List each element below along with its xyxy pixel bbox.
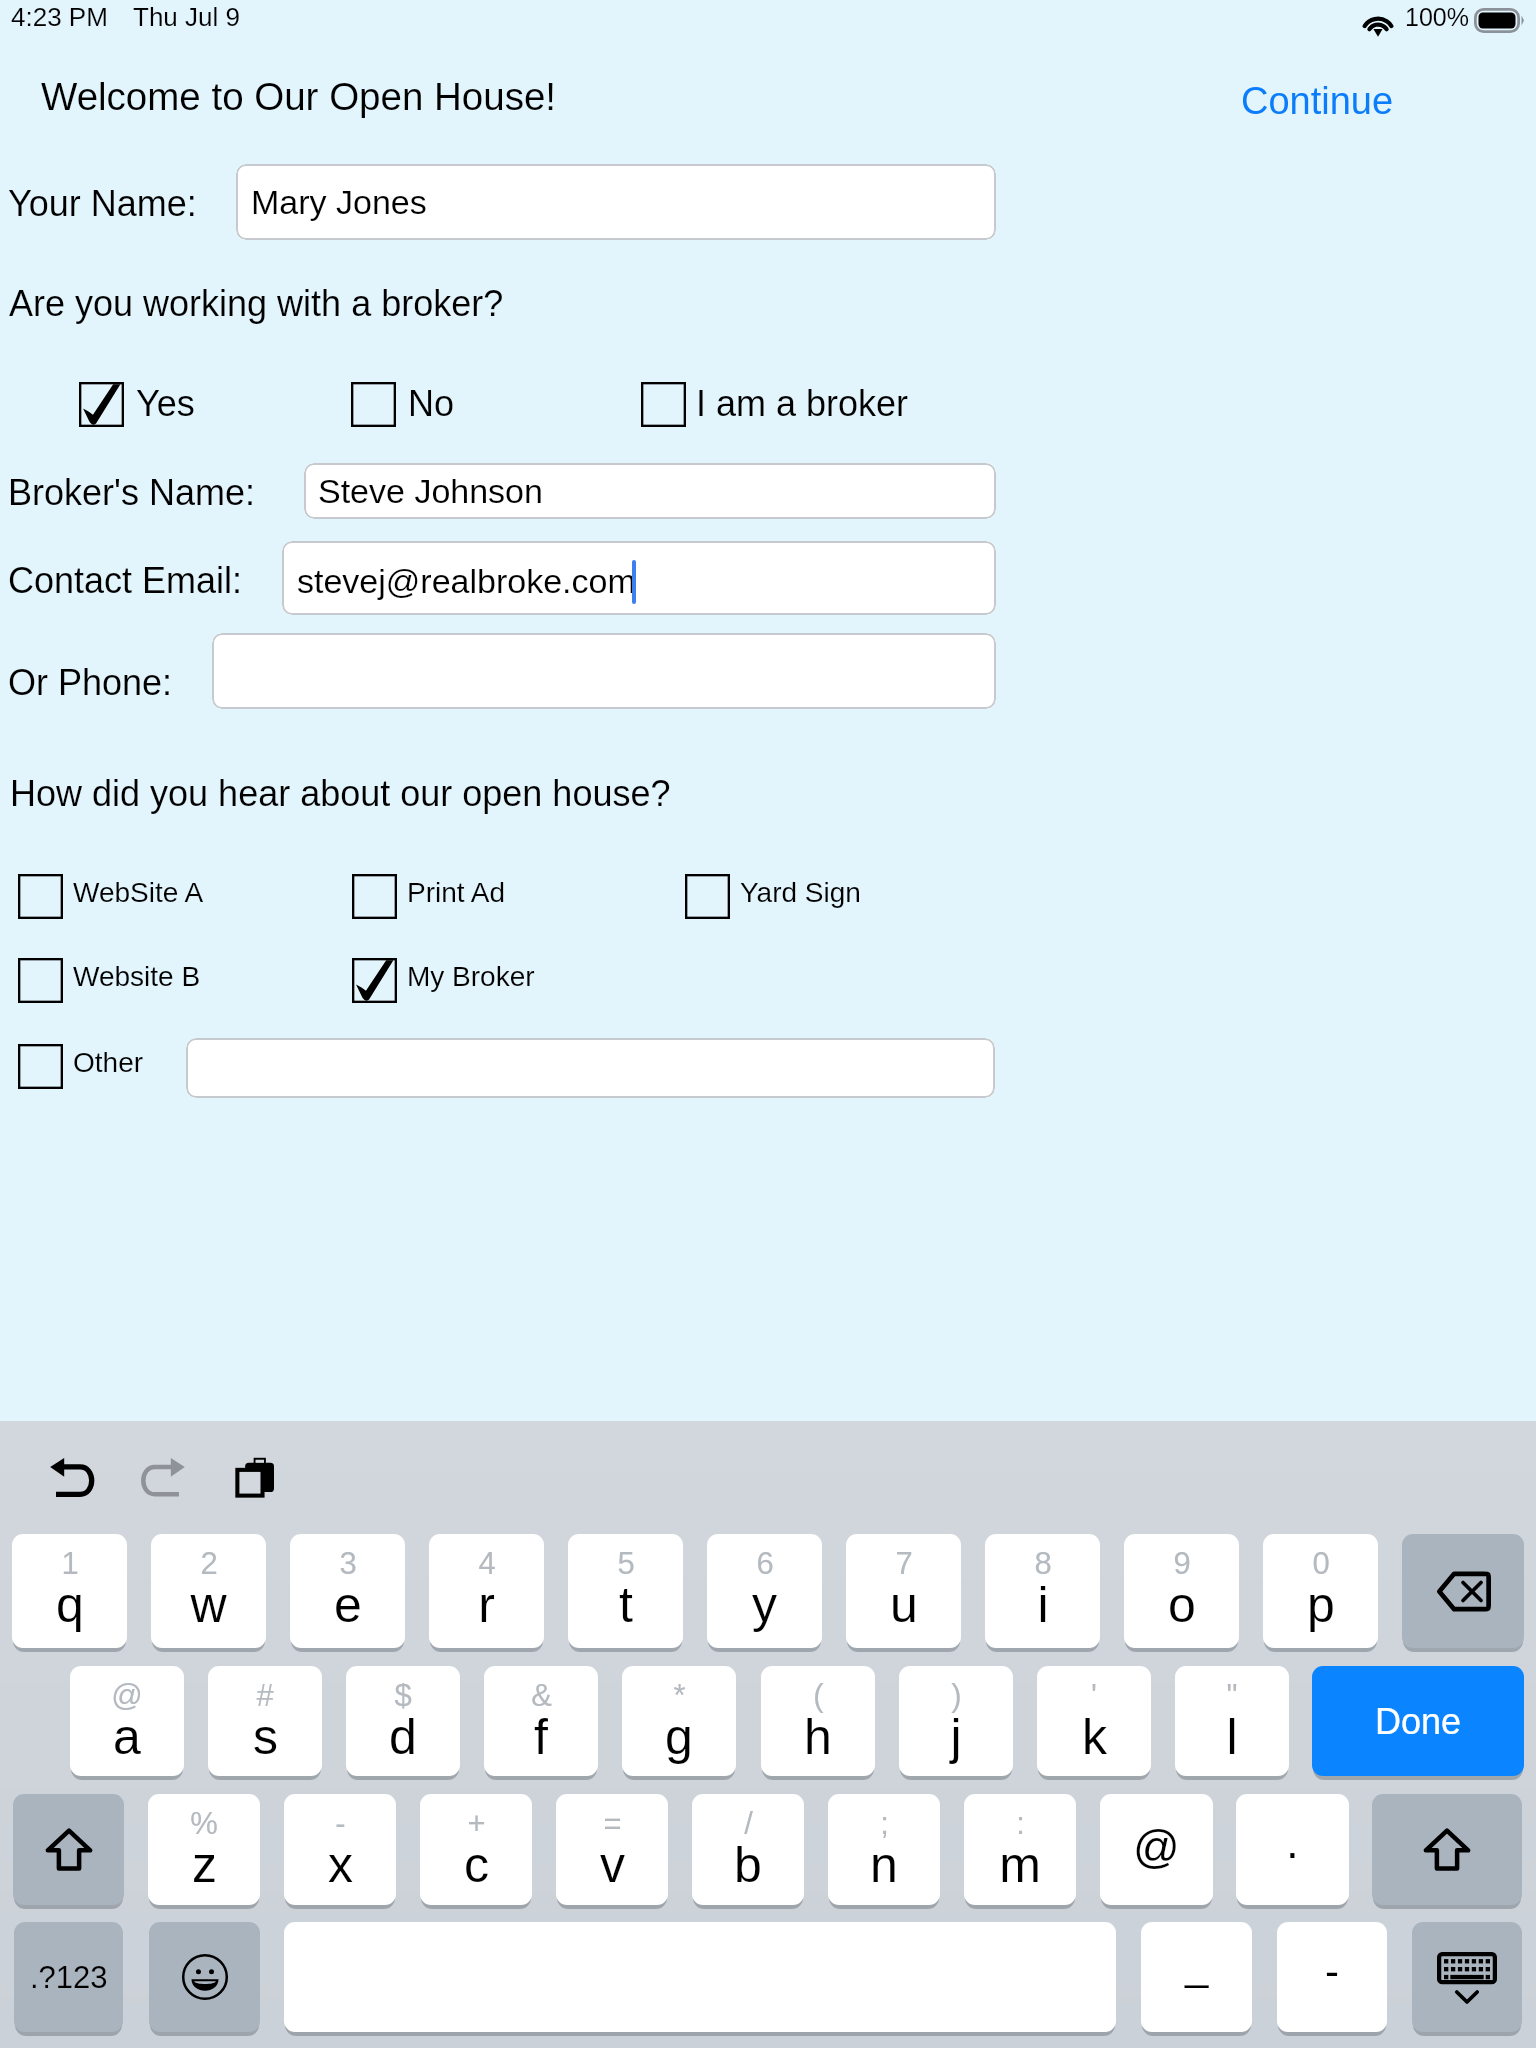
button[interactable]: 8 (985, 1534, 1100, 1648)
staticText: ( (813, 1678, 824, 1713)
button[interactable]: Shift (1372, 1794, 1522, 1905)
staticText: f (534, 1709, 548, 1765)
button[interactable]: 3 (290, 1534, 405, 1648)
staticText: ; (880, 1806, 889, 1841)
button[interactable]: 1 (12, 1534, 127, 1648)
button[interactable]: $ (346, 1666, 460, 1776)
button[interactable]: Backspace (1402, 1534, 1524, 1648)
staticText: 2 (200, 1546, 218, 1581)
staticText: g (665, 1709, 693, 1765)
staticText: w (190, 1577, 227, 1633)
staticText: Broker's Name: (8, 472, 255, 512)
staticText: Contact Email: (8, 560, 243, 600)
staticText: r (478, 1577, 495, 1633)
staticText: @ (1133, 1821, 1180, 1872)
other: Shift (1424, 1828, 1470, 1871)
staticText: 3 (339, 1546, 357, 1581)
button[interactable]: - (284, 1794, 396, 1905)
staticText: 7 (895, 1546, 913, 1581)
other: Shift (46, 1828, 92, 1871)
button[interactable]: & (484, 1666, 598, 1776)
button[interactable]: ) (899, 1666, 1013, 1776)
button[interactable]: / (692, 1794, 804, 1905)
button[interactable]: I am a broker (641, 376, 909, 433)
button[interactable]: No (351, 376, 455, 433)
button[interactable] (212, 633, 996, 709)
button[interactable]: Shift (13, 1794, 124, 1905)
staticText: 5 (617, 1546, 635, 1581)
staticText: - (1325, 1948, 1339, 1995)
button[interactable]: : (964, 1794, 1076, 1905)
button[interactable]: 0 (1263, 1534, 1378, 1648)
staticText: My Broker (407, 961, 535, 992)
staticText: Website B (73, 961, 201, 992)
button[interactable]: My Broker (352, 952, 537, 1009)
button[interactable]: Continue (1236, 76, 1389, 118)
button[interactable]: Mary Jones (236, 164, 996, 240)
staticText: Steve Johnson (318, 472, 543, 510)
staticText: k (1082, 1709, 1107, 1765)
button[interactable]: 2 (151, 1534, 266, 1648)
staticText: : (1016, 1806, 1025, 1841)
staticText: e (334, 1577, 362, 1633)
button[interactable]: ; (828, 1794, 940, 1905)
button[interactable]: = (556, 1794, 668, 1905)
button[interactable]: Steve Johnson (304, 463, 996, 519)
button[interactable]: " (1175, 1666, 1289, 1776)
button[interactable]: + (420, 1794, 532, 1905)
staticText: u (890, 1577, 918, 1633)
staticText: p (1307, 1577, 1335, 1633)
other: Paste (237, 1457, 274, 1496)
button[interactable]: 5 (568, 1534, 683, 1648)
button[interactable]: 4 (429, 1534, 544, 1648)
button[interactable]: - (1277, 1922, 1387, 2032)
button[interactable]: @ (1100, 1794, 1213, 1905)
staticText: stevej@realbroke.com (297, 562, 636, 600)
staticText: Are you working with a broker? (9, 283, 504, 323)
staticText: l (1226, 1709, 1238, 1765)
button[interactable]: _ (1141, 1922, 1252, 2032)
button[interactable]: Done (1312, 1666, 1524, 1776)
staticText: ) (951, 1678, 962, 1713)
button[interactable]: WebSite A (18, 868, 202, 925)
staticText: Print Ad (407, 877, 506, 908)
button[interactable]: ' (1037, 1666, 1151, 1776)
button[interactable]: Yes (79, 376, 196, 433)
staticText: s (253, 1709, 278, 1765)
button[interactable]: .?123 (14, 1922, 123, 2032)
staticText: Welcome to Our Open House! (41, 75, 556, 118)
button[interactable]: Yard Sign (685, 868, 866, 925)
button[interactable]: # (208, 1666, 322, 1776)
button[interactable]: ( (761, 1666, 875, 1776)
button[interactable]: Emoji (149, 1922, 260, 2032)
button[interactable]: Website B (18, 952, 202, 1009)
button[interactable]: . (1236, 1794, 1349, 1905)
button[interactable]: 7 (846, 1534, 961, 1648)
button[interactable] (186, 1038, 995, 1098)
other: Undo (50, 1458, 93, 1497)
staticText: # (256, 1678, 274, 1713)
button[interactable]: Hide keyboard (1412, 1922, 1522, 2032)
button[interactable]: Print Ad (352, 868, 512, 925)
staticText: % (190, 1806, 218, 1841)
button[interactable]: stevej@realbroke.com (282, 541, 996, 615)
button[interactable]: * (622, 1666, 736, 1776)
staticText: a (113, 1709, 141, 1765)
staticText: $ (394, 1678, 412, 1713)
other: Wi-Fi (1361, 9, 1395, 35)
button[interactable]: Other (18, 1038, 152, 1095)
staticText: @ (111, 1678, 143, 1713)
other: Emoji (181, 1953, 229, 2001)
button[interactable]: 9 (1124, 1534, 1239, 1648)
other: Hide keyboard (1437, 1952, 1497, 2002)
staticText: WebSite A (73, 877, 204, 908)
staticText: 100% (1405, 3, 1469, 31)
button[interactable]: @ (70, 1666, 184, 1776)
staticText: x (328, 1837, 353, 1893)
staticText: v (600, 1837, 625, 1893)
button[interactable]: % (148, 1794, 260, 1905)
button[interactable]: 6 (707, 1534, 822, 1648)
staticText: . (1286, 1816, 1299, 1867)
other: Backspace (1436, 1571, 1491, 1612)
